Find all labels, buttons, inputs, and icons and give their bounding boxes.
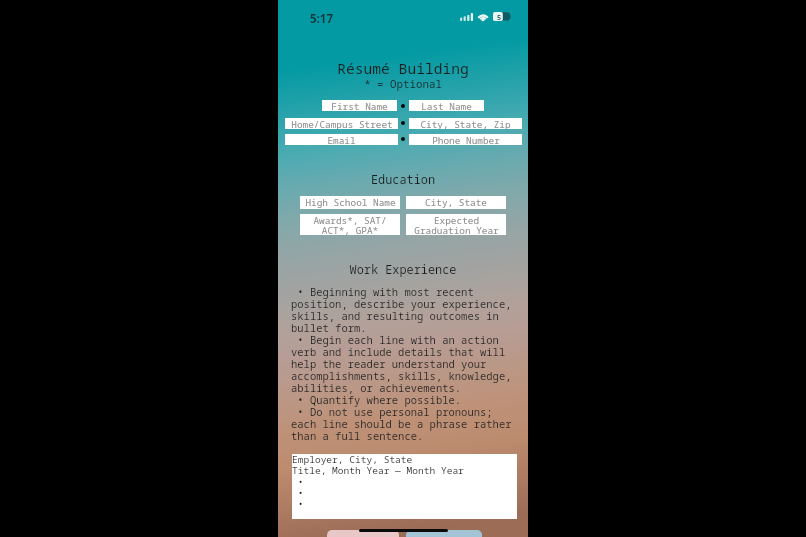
staticText: Last Name xyxy=(421,100,472,111)
staticText: • Beginning with most recent position, d… xyxy=(291,285,512,444)
staticText: City, State xyxy=(425,196,487,209)
button[interactable]: Email xyxy=(285,134,398,145)
staticText: Home/Campus Street xyxy=(291,118,393,129)
staticText: Phone Number xyxy=(432,134,500,145)
staticText: Expected Graduation Year xyxy=(414,214,499,235)
staticText: Employer, City, State Title, Month Year … xyxy=(292,453,464,510)
button[interactable]: Expected Graduation Year xyxy=(406,214,506,235)
button[interactable]: Next section xyxy=(406,530,482,537)
staticText: First Name xyxy=(331,100,388,111)
button[interactable]: City, State xyxy=(406,196,506,209)
staticText: Work Experience xyxy=(278,261,528,277)
button[interactable]: High School Name xyxy=(300,196,400,209)
staticText: Email xyxy=(327,134,356,145)
button[interactable]: Phone Number xyxy=(409,134,522,145)
staticText: City, State, Zip xyxy=(420,118,511,129)
button[interactable]: Previous section xyxy=(327,530,399,537)
staticText: Awards*, SAT/ ACT*, GPA* xyxy=(313,214,387,235)
staticText: * = Optional xyxy=(278,76,528,91)
button[interactable]: Employer, City, State Title, Month Year … xyxy=(292,454,517,519)
button[interactable]: Awards*, SAT/ ACT*, GPA* xyxy=(300,214,400,235)
staticText: 5:17 xyxy=(310,11,333,27)
button[interactable]: Home/Campus Street xyxy=(285,118,398,129)
button[interactable]: Last Name xyxy=(409,100,484,111)
button[interactable]: First Name xyxy=(322,100,397,111)
staticText: Education xyxy=(278,171,528,187)
staticText: Résumé Building xyxy=(278,58,528,78)
staticText: 5 xyxy=(497,12,502,21)
button[interactable]: City, State, Zip xyxy=(409,118,522,129)
staticText: High School Name xyxy=(305,196,396,209)
